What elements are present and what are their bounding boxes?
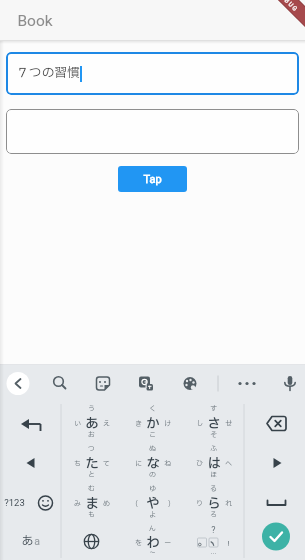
- staticText: け: [164, 419, 171, 429]
- staticText: い: [74, 419, 81, 429]
- staticText: ろ: [210, 510, 217, 520]
- staticText: の: [149, 470, 156, 480]
- staticText: ?123: [4, 497, 25, 508]
- staticText: う: [88, 404, 95, 414]
- staticText: わ: [146, 533, 160, 553]
- staticText: ね: [164, 459, 171, 469]
- staticText: え: [103, 419, 110, 429]
- staticText: よ: [149, 510, 156, 520]
- button[interactable]: [43, 365, 86, 402]
- staticText: お: [88, 430, 95, 440]
- staticText: れ: [225, 499, 232, 509]
- staticText: た: [85, 454, 99, 474]
- button[interactable]: わ: [122, 522, 183, 560]
- button[interactable]: [129, 365, 173, 402]
- button[interactable]: [0, 365, 43, 402]
- staticText: も: [88, 510, 95, 520]
- staticText: か: [146, 414, 160, 434]
- staticText: き: [135, 419, 142, 429]
- button[interactable]: [86, 365, 129, 402]
- staticText: つ: [88, 444, 95, 454]
- staticText: a: [34, 535, 40, 547]
- button[interactable]: [244, 522, 305, 560]
- button[interactable]: [261, 365, 305, 402]
- button[interactable]: か: [122, 402, 183, 442]
- button[interactable]: ?123: [0, 482, 61, 522]
- button[interactable]: ?: [183, 522, 244, 560]
- staticText: る: [210, 484, 217, 494]
- button[interactable]: [217, 365, 261, 402]
- staticText: す: [210, 404, 217, 414]
- button[interactable]: は: [183, 442, 244, 482]
- button[interactable]: ら: [183, 482, 244, 522]
- staticText: へ: [225, 459, 232, 469]
- staticText: そ: [210, 430, 217, 440]
- button[interactable]: Tap: [118, 166, 187, 192]
- button[interactable]: [6, 109, 299, 154]
- staticText: Tap: [143, 173, 162, 186]
- staticText: し: [196, 419, 203, 429]
- staticText: と: [88, 470, 95, 480]
- staticText: (: [135, 499, 138, 509]
- staticText: Book: [17, 12, 53, 30]
- staticText: !: [227, 539, 230, 548]
- staticText: み: [74, 499, 81, 509]
- button[interactable]: さ: [183, 402, 244, 442]
- button[interactable]: [0, 442, 61, 482]
- staticText: ゆ: [149, 484, 156, 494]
- staticText: ぬ: [149, 444, 156, 454]
- button[interactable]: [244, 442, 305, 482]
- staticText: あ: [85, 414, 99, 434]
- staticText: ち: [74, 459, 81, 469]
- staticText: DEBUG: [276, 0, 300, 13]
- button[interactable]: [0, 402, 61, 442]
- staticText: り: [196, 499, 203, 509]
- staticText: ): [168, 499, 171, 509]
- staticText: ７つの習慣: [16, 64, 80, 83]
- staticText: ひ: [196, 459, 203, 469]
- staticText: く: [149, 404, 156, 414]
- button[interactable]: あ: [61, 402, 122, 442]
- staticText: ー: [164, 538, 171, 548]
- button[interactable]: [61, 522, 122, 560]
- button[interactable]: あ: [0, 522, 61, 560]
- staticText: あ: [21, 532, 34, 550]
- staticText: ?: [211, 525, 216, 536]
- button[interactable]: や: [122, 482, 183, 522]
- staticText: む: [88, 484, 95, 494]
- staticText: ほ: [210, 470, 217, 480]
- button[interactable]: [244, 482, 305, 522]
- button[interactable]: た: [61, 442, 122, 482]
- staticText: ん: [149, 524, 156, 534]
- staticText: め: [103, 499, 110, 509]
- staticText: 〜: [149, 548, 156, 558]
- button[interactable]: な: [122, 442, 183, 482]
- staticText: な: [146, 454, 160, 474]
- staticText: を: [135, 538, 142, 548]
- staticText: さ: [207, 414, 221, 434]
- button[interactable]: [173, 365, 217, 402]
- staticText: ふ: [210, 444, 217, 454]
- button[interactable]: ７つの習慣: [6, 52, 299, 95]
- staticText: …: [210, 550, 217, 559]
- staticText: せ: [225, 419, 232, 429]
- staticText: ま: [85, 494, 99, 514]
- staticText: は: [207, 454, 221, 474]
- button[interactable]: [244, 402, 305, 442]
- staticText: ら: [207, 494, 221, 514]
- staticText: に: [135, 459, 142, 469]
- staticText: や: [146, 494, 160, 514]
- staticText: こ: [149, 430, 156, 440]
- staticText: て: [103, 459, 110, 469]
- button[interactable]: ま: [61, 482, 122, 522]
